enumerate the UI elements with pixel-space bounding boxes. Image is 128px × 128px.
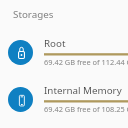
other: Internal memory <box>8 87 33 112</box>
staticText: Root <box>44 37 66 50</box>
other: Root storage <box>8 40 33 65</box>
staticText: Internal Memory <box>44 84 122 97</box>
staticText: 69.42 GB free of 112.44 GB <box>44 57 128 67</box>
button[interactable]: Root storage <box>0 29 128 76</box>
staticText: Storages <box>13 8 54 21</box>
button[interactable]: Internal memory <box>0 76 128 123</box>
staticText: 69.42 GB free of 108.25 GB <box>44 104 128 114</box>
